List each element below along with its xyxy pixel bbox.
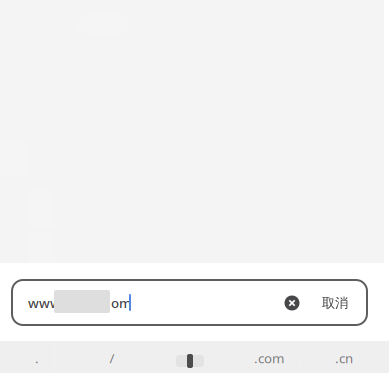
staticText: / bbox=[109, 349, 114, 367]
staticText: . bbox=[35, 349, 39, 367]
button[interactable]: www bbox=[12, 280, 367, 325]
button[interactable]: / bbox=[82, 343, 142, 373]
button[interactable]: 取消 bbox=[314, 286, 356, 320]
button[interactable]: Clear text bbox=[275, 286, 309, 320]
staticText: 取消 bbox=[322, 295, 348, 311]
staticText: om bbox=[111, 294, 132, 312]
staticText: www bbox=[28, 294, 61, 312]
button[interactable]: .com bbox=[232, 343, 306, 373]
staticText: .com bbox=[254, 349, 284, 367]
button[interactable]: space bbox=[151, 343, 229, 373]
button[interactable]: . bbox=[10, 343, 64, 373]
staticText: .cn bbox=[335, 349, 353, 367]
button[interactable]: .cn bbox=[304, 343, 383, 373]
